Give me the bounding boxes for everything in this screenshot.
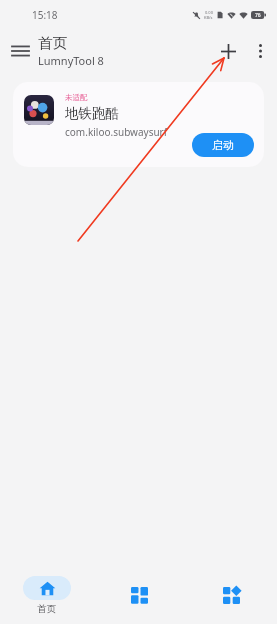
button[interactable]: More options <box>245 36 275 66</box>
staticText: 启动 <box>212 138 234 152</box>
staticText: 地铁跑酷 <box>65 105 119 122</box>
staticText: 未适配 <box>65 93 88 102</box>
staticText: 首页 <box>37 603 56 615</box>
button[interactable]: Apps <box>93 579 185 611</box>
button[interactable]: Menu <box>4 35 36 67</box>
staticText: com.kiloo.subwaysurf <box>65 125 168 139</box>
staticText: 15:18 <box>32 8 58 22</box>
staticText: 首页 <box>38 34 67 52</box>
staticText: 76 <box>255 12 261 19</box>
staticText: KB/s <box>204 15 213 20</box>
button[interactable]: Tools <box>185 579 277 611</box>
button[interactable]: Home <box>0 572 93 619</box>
staticText: LumnyTool 8 <box>38 53 104 68</box>
staticText: 0.00 <box>205 10 213 15</box>
button[interactable]: 未适配 <box>13 82 264 167</box>
button[interactable]: 启动 <box>192 133 254 157</box>
button[interactable]: Add <box>211 34 245 68</box>
